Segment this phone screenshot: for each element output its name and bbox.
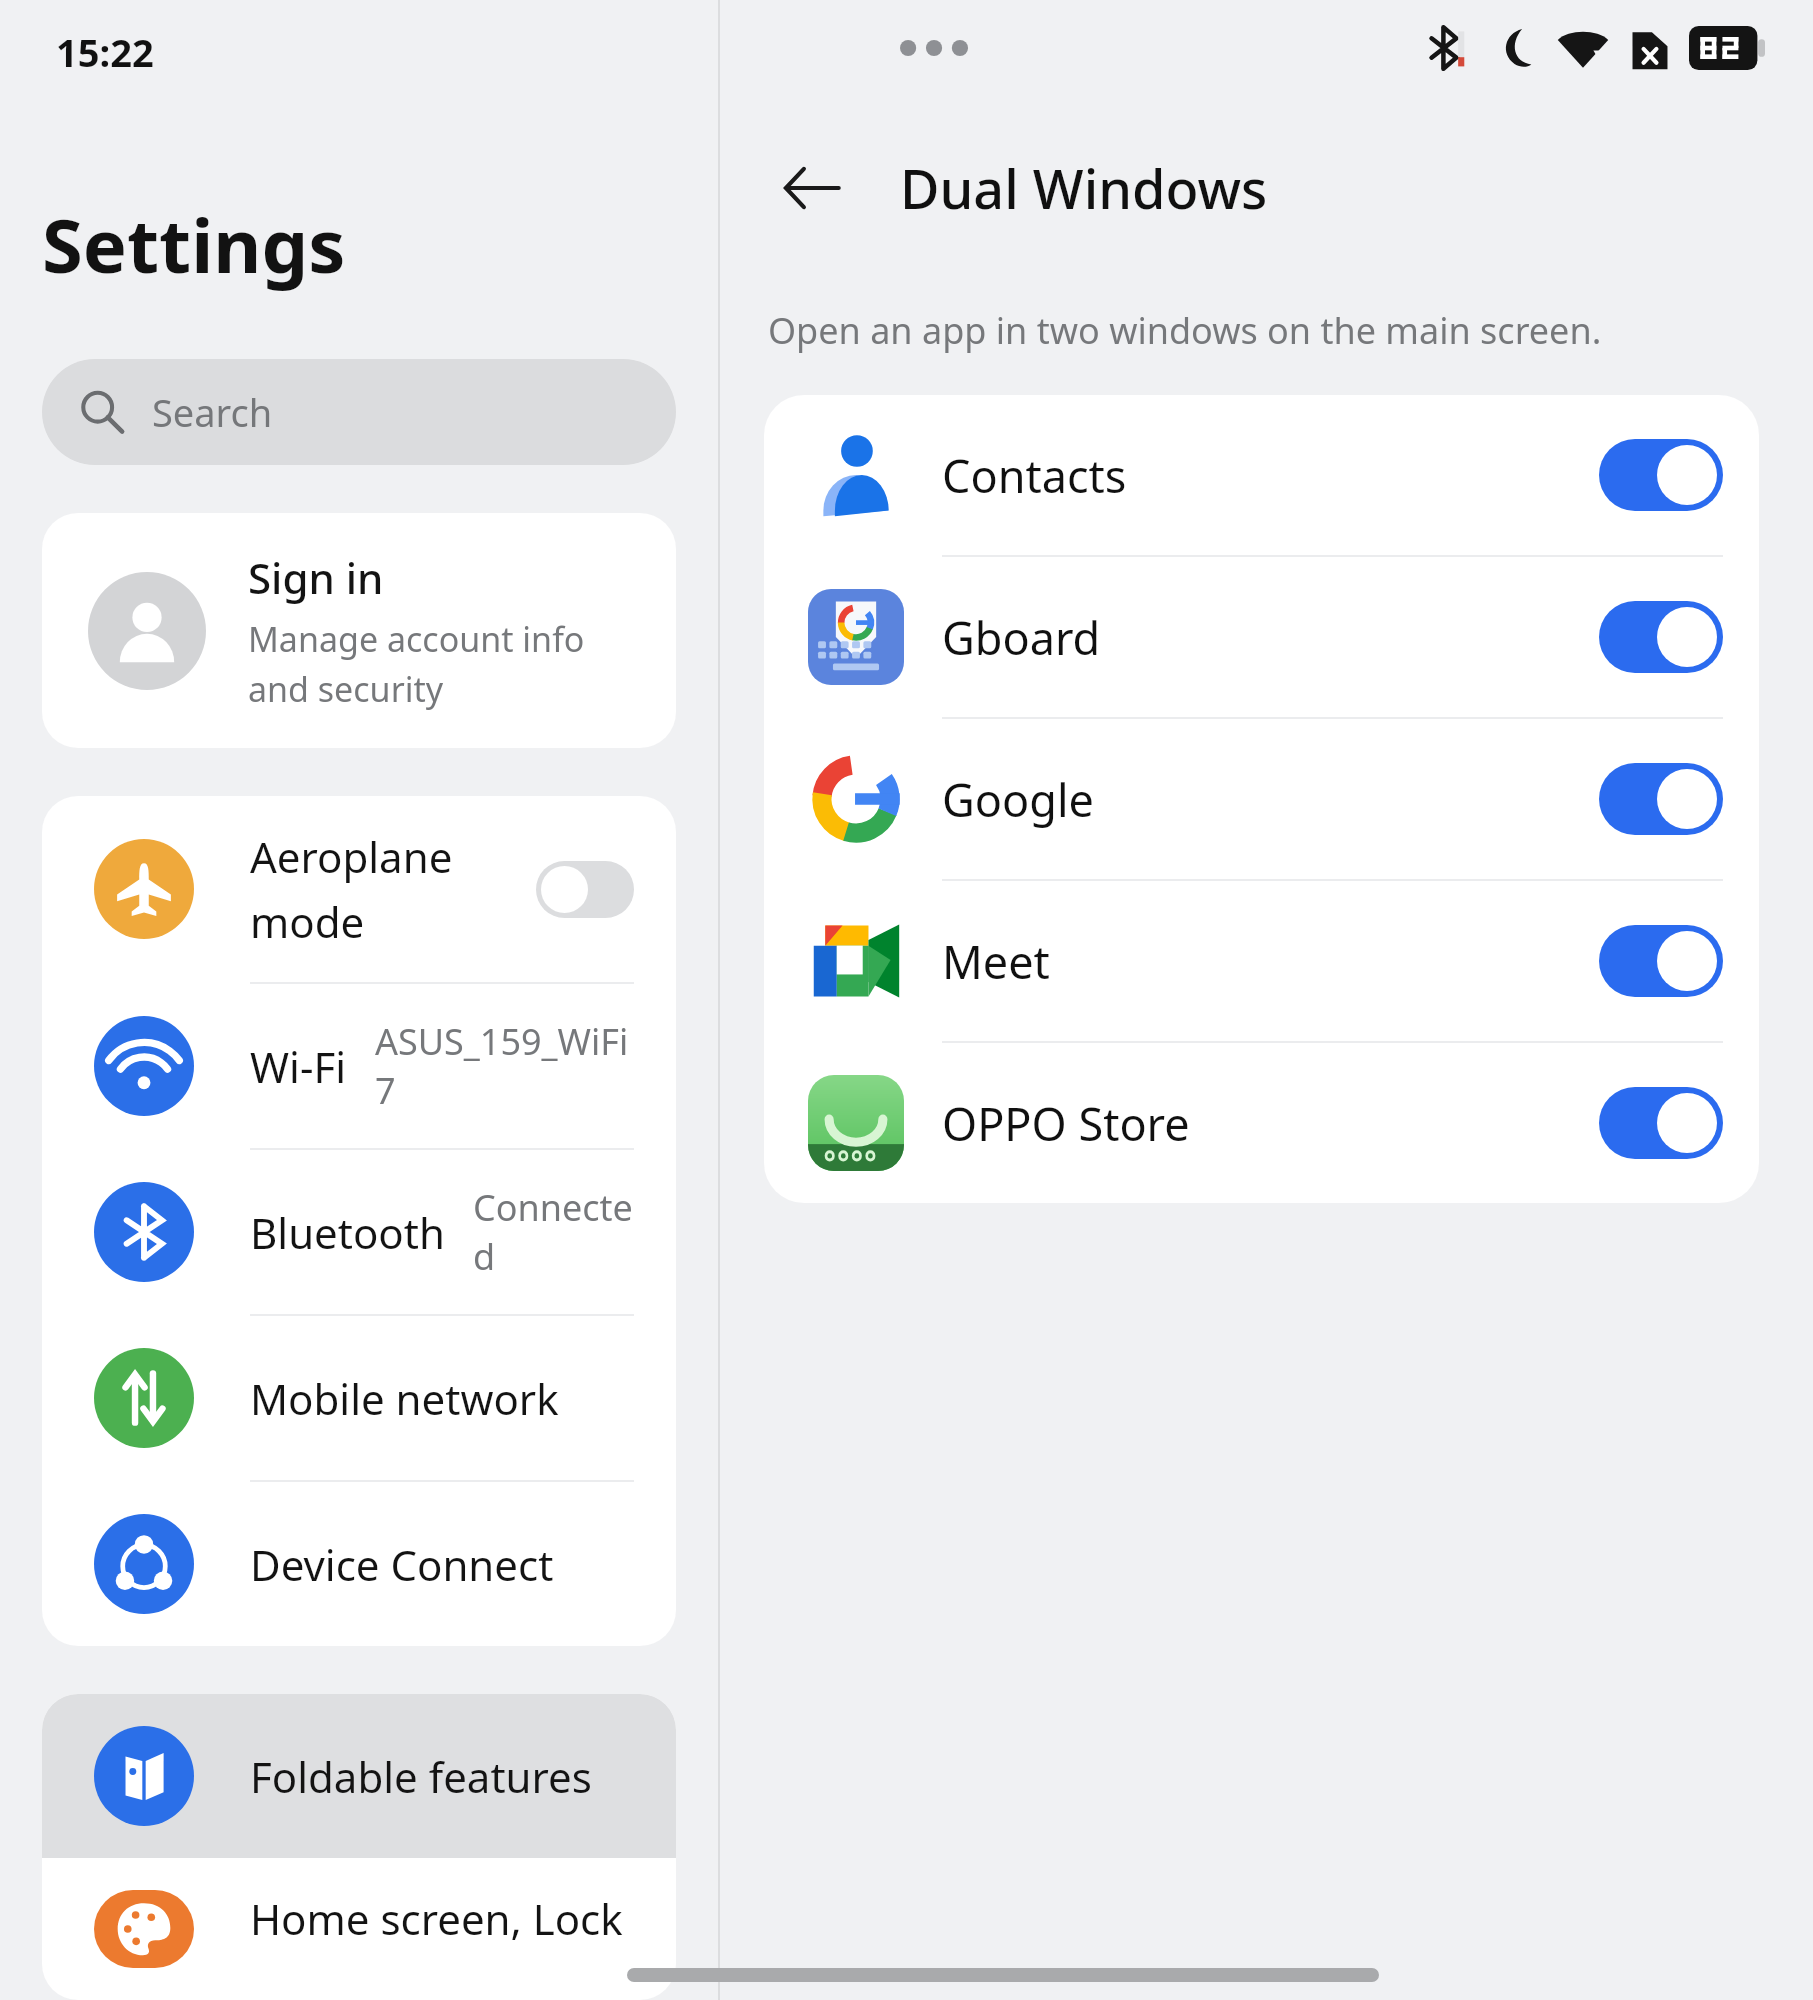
staticText: and security [248, 666, 444, 712]
button[interactable]: Sign in [42, 513, 676, 748]
button[interactable]: Contacts [764, 395, 1759, 555]
button[interactable]: Wi-Fi [42, 984, 676, 1148]
staticText: Wi-Fi [250, 1038, 347, 1095]
button[interactable]: OPPO Store, on [1599, 1087, 1723, 1159]
button[interactable]: Aeroplane mode, off [536, 861, 634, 918]
staticText: 15:22 [56, 26, 154, 78]
staticText: Aeroplane [250, 828, 453, 885]
staticText: Device Connect [250, 1536, 554, 1593]
staticText: mode [250, 893, 365, 950]
button[interactable]: Mobile network [42, 1316, 676, 1480]
button[interactable]: Device Connect [42, 1482, 676, 1646]
button[interactable]: Bluetooth [42, 1150, 676, 1314]
staticText: Contacts [942, 445, 1599, 506]
staticText: Bluetooth [250, 1204, 445, 1261]
button[interactable]: OPPO Store [764, 1043, 1759, 1203]
button[interactable]: Foldable features [42, 1694, 676, 1858]
button[interactable]: Google [764, 719, 1759, 879]
staticText: Google [942, 769, 1599, 830]
button[interactable]: Meet, on [1599, 925, 1723, 997]
staticText: Settings [42, 194, 346, 295]
button[interactable]: Aeroplane [42, 796, 676, 982]
staticText: Manage account info [248, 616, 585, 662]
staticText: Foldable features [250, 1748, 592, 1805]
button[interactable]: Google, on [1599, 763, 1723, 835]
staticText: Search [152, 386, 273, 438]
staticText: Meet [942, 931, 1599, 992]
staticText: Mobile network [250, 1370, 559, 1427]
staticText: Connected [473, 1183, 634, 1281]
button[interactable]: Home screen, Lock [42, 1858, 676, 2000]
staticText: Gboard [942, 607, 1599, 668]
staticText: ASUS_159_WiFi7 [375, 1017, 634, 1115]
staticText: Dual Windows [900, 151, 1268, 225]
staticText: OPPO Store [942, 1093, 1599, 1154]
staticText: Home screen, Lock [250, 1890, 623, 1947]
button[interactable]: Back [766, 142, 858, 234]
button[interactable]: Gboard, on [1599, 601, 1723, 673]
staticText: Sign in [248, 549, 384, 606]
staticText: Open an app in two windows on the main s… [768, 306, 1602, 355]
button[interactable]: Meet [764, 881, 1759, 1041]
button[interactable]: Gboard [764, 557, 1759, 717]
button[interactable]: Contacts, on [1599, 439, 1723, 511]
button[interactable]: Search [42, 359, 676, 465]
